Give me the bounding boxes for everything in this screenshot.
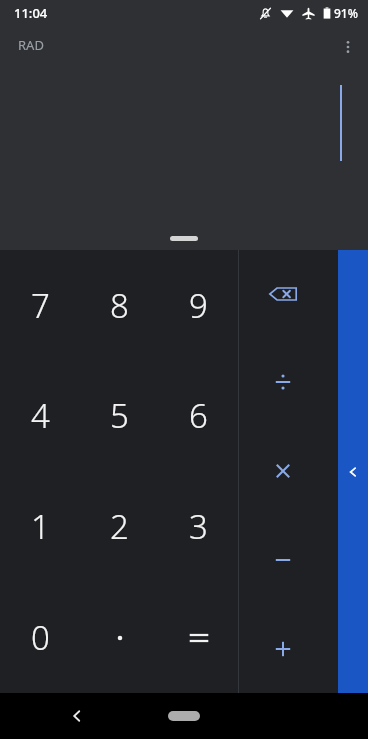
staticText: RAD	[18, 36, 44, 54]
button[interactable]: Multiply	[239, 426, 338, 515]
button[interactable]: Subtract	[239, 515, 338, 604]
button[interactable]: 7	[0, 250, 80, 360]
staticText: 1	[31, 504, 50, 549]
staticText: 5	[110, 393, 129, 438]
button[interactable]: 1	[0, 471, 80, 582]
button[interactable]: RAD	[8, 32, 54, 58]
button[interactable]: 4	[0, 360, 80, 471]
staticText: 4	[31, 393, 50, 438]
staticText: 3	[189, 504, 208, 549]
staticText: 9	[189, 283, 208, 328]
button[interactable]: Open history panel	[338, 250, 368, 693]
button[interactable]: Backspace	[239, 250, 338, 338]
staticText: 0	[31, 615, 50, 660]
button[interactable]: Divide	[239, 338, 338, 426]
button[interactable]: 0	[0, 582, 80, 693]
button[interactable]: 5	[80, 360, 159, 471]
button[interactable]: 3	[159, 471, 238, 582]
button[interactable]: Back	[58, 697, 96, 735]
staticText: 8	[110, 283, 129, 328]
button[interactable]: 6	[159, 360, 238, 471]
staticText: 2	[110, 504, 129, 549]
button[interactable]: Home	[161, 700, 207, 732]
button[interactable]: 2	[80, 471, 159, 582]
button[interactable]	[80, 582, 159, 693]
button[interactable]	[159, 582, 238, 693]
staticText: 11:04	[14, 4, 48, 22]
button[interactable]: 9	[159, 250, 238, 360]
staticText: 7	[31, 283, 50, 328]
button[interactable]: More options	[334, 33, 362, 61]
staticText: 6	[189, 393, 208, 438]
staticText: 91%	[334, 5, 358, 21]
button[interactable]: Add	[239, 604, 338, 693]
button[interactable]: 8	[80, 250, 159, 360]
